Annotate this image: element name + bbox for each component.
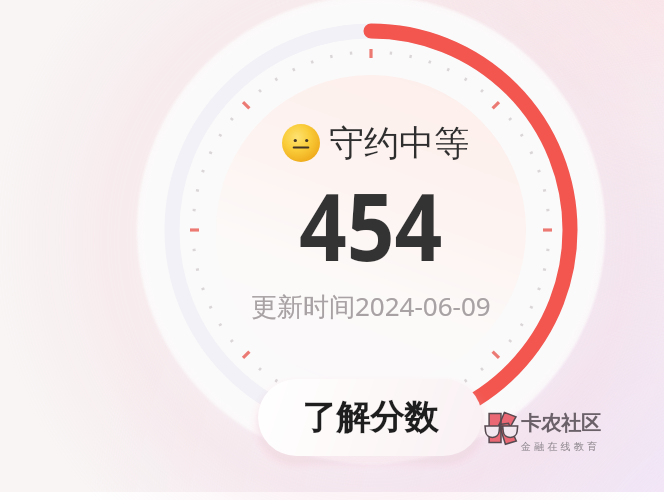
staticText: 更新时间2024-06-09	[251, 288, 491, 324]
staticText: 卡农社区	[521, 411, 601, 436]
staticText: 金融在线教育	[521, 440, 601, 453]
staticText: 守约中等	[329, 121, 469, 165]
other: 卡农社区	[484, 411, 518, 445]
staticText: 了解分数	[302, 396, 438, 439]
button[interactable]: 了解分数	[258, 379, 482, 456]
staticText: 454	[299, 161, 443, 289]
